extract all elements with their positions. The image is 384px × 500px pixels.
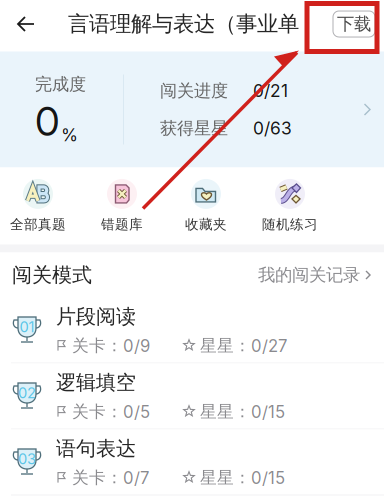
button[interactable]: 错题库	[80, 179, 164, 233]
button[interactable]: 随机练习	[248, 179, 332, 233]
staticText: %	[61, 124, 78, 145]
staticText: 逻辑填空	[56, 370, 136, 395]
staticText: 01	[19, 318, 34, 336]
staticText: 全部真题	[10, 216, 66, 233]
button[interactable]: 02	[0, 363, 384, 429]
staticText: 0/63	[253, 118, 292, 139]
staticText: 02	[18, 384, 36, 402]
staticText: 错题库	[101, 216, 143, 233]
staticText: 星星：0/27	[195, 335, 287, 356]
button[interactable]: 01	[0, 297, 384, 363]
staticText: 获得星星	[160, 117, 228, 139]
staticText: 收藏夹	[185, 216, 227, 233]
staticText: 关卡：0/9	[67, 335, 150, 356]
staticText: 言语理解与表达（事业单	[68, 11, 299, 37]
staticText: 语句表达	[56, 436, 136, 461]
button[interactable]: 03	[0, 429, 384, 495]
button[interactable]: 全部真题	[0, 179, 80, 233]
staticText: 片段阅读	[56, 304, 136, 329]
staticText: 0/21	[253, 80, 288, 101]
staticText: 0	[35, 97, 60, 145]
staticText: 星星：0/15	[195, 401, 285, 422]
staticText: 关卡：0/5	[67, 401, 150, 422]
staticText: 闯关进度	[160, 80, 228, 101]
staticText: 星星：0/15	[195, 467, 285, 488]
button[interactable]: 我的闯关记录	[258, 264, 384, 286]
button[interactable]: 收藏夹	[164, 179, 248, 233]
button[interactable]: 完成度	[0, 51, 384, 167]
staticText: 关卡：0/7	[67, 467, 149, 488]
button[interactable]: 下载	[333, 11, 375, 37]
staticText: 完成度	[35, 74, 86, 95]
button[interactable]: Back	[0, 0, 52, 50]
staticText: 随机练习	[262, 216, 318, 233]
staticText: 我的闯关记录	[258, 264, 360, 286]
staticText: 03	[18, 450, 36, 468]
staticText: 下载	[337, 13, 371, 35]
staticText: 闯关模式	[12, 262, 92, 288]
